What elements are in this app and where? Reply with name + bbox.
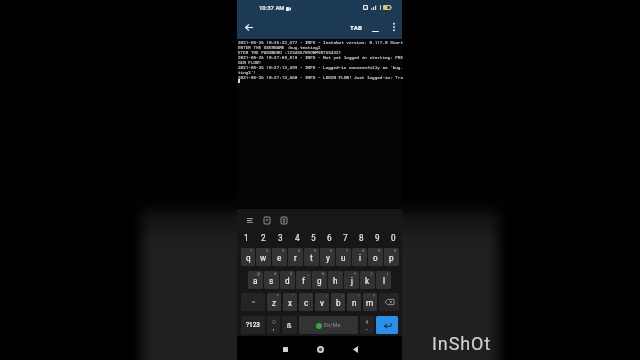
button[interactable]: - (328, 271, 343, 289)
button[interactable]: Minimize (367, 20, 383, 36)
staticText: z (272, 298, 277, 308)
staticText: 4 (295, 233, 300, 243)
staticText: ? (373, 294, 375, 298)
button[interactable]: 1 (241, 248, 255, 266)
button[interactable]: $ (280, 271, 295, 289)
button[interactable]: ? (363, 293, 377, 311)
staticText: b (336, 298, 341, 308)
button[interactable]: 9 (368, 248, 383, 266)
button[interactable]: 3 (272, 248, 287, 266)
button[interactable]: Home (312, 341, 328, 357)
button[interactable]: ! (347, 293, 361, 311)
staticText: ! (358, 294, 359, 298)
staticText: e (277, 253, 282, 263)
button[interactable]: ; (331, 293, 345, 311)
button[interactable]: 0 (385, 229, 401, 246)
button[interactable]: Clipboard (261, 214, 273, 226)
staticText: g (317, 276, 322, 286)
button[interactable]: . (360, 316, 374, 334)
staticText: $ (290, 272, 293, 276)
button[interactable]: 8 (353, 229, 369, 246)
button[interactable]: * (267, 293, 281, 311)
button[interactable]: ( (360, 271, 375, 289)
button[interactable]: + (344, 271, 359, 289)
staticText: 9 (378, 249, 381, 253)
staticText: a (253, 276, 258, 286)
button[interactable]: Shift (241, 293, 265, 311)
button[interactable]: Recents (277, 341, 293, 357)
staticText: 1 (244, 233, 249, 243)
button[interactable]: Emoji (267, 316, 280, 334)
button[interactable]: Backspace (379, 293, 399, 311)
button[interactable]: More options (385, 18, 403, 36)
button[interactable]: & (312, 271, 327, 289)
staticText: j (351, 276, 353, 286)
button[interactable]: Text editing (278, 214, 290, 226)
button[interactable]: ) (376, 271, 391, 289)
staticText: + (354, 272, 357, 276)
button[interactable]: Back (240, 18, 258, 36)
staticText: 6 (330, 249, 333, 253)
button[interactable]: ' (299, 293, 313, 311)
button[interactable]: _ (296, 271, 311, 289)
button[interactable]: @ (248, 271, 263, 289)
staticText: 0 (391, 233, 396, 243)
staticText: x (288, 298, 293, 308)
button[interactable]: 8 (352, 248, 367, 266)
button[interactable]: TAB (348, 21, 365, 34)
staticText: : (326, 294, 327, 298)
staticText: ?123 (246, 321, 261, 329)
button[interactable]: Enter (376, 316, 398, 334)
button[interactable]: 6 (320, 248, 335, 266)
staticText: i (359, 253, 361, 263)
button[interactable]: 2 (255, 229, 272, 246)
button[interactable]: 3 (272, 229, 289, 246)
staticText: o (373, 253, 378, 263)
button[interactable]: 5 (304, 248, 319, 266)
button[interactable]: Keyboard menu (244, 214, 256, 226)
staticText: 2 (266, 249, 269, 253)
staticText: TAB (350, 24, 363, 31)
staticText: 5 (311, 233, 316, 243)
staticText: v (320, 298, 324, 308)
staticText: m (366, 298, 374, 308)
button[interactable]: 0 (384, 248, 399, 266)
button[interactable]: ß (282, 316, 297, 334)
button[interactable]: 5 (305, 229, 321, 246)
staticText: & (322, 272, 325, 276)
staticText: ting2'! (238, 69, 257, 75)
staticText: c (304, 298, 309, 308)
button[interactable]: : (315, 293, 329, 311)
staticText: ; (342, 294, 343, 298)
staticText: # (274, 272, 277, 276)
button[interactable]: Space (299, 316, 358, 334)
staticText: 6 (327, 233, 332, 243)
staticText: 2021-05-26 10:37:08,818 - INFO - Not yet… (238, 54, 403, 60)
staticText: 2 (261, 233, 266, 243)
button[interactable]: 4 (288, 248, 303, 266)
button[interactable]: Back (347, 341, 363, 357)
button[interactable]: 1 (238, 229, 255, 246)
staticText: GIN FLOW! (238, 59, 262, 65)
button[interactable]: 4 (289, 229, 305, 246)
button[interactable]: 6 (321, 229, 337, 246)
staticText: k (365, 276, 370, 286)
staticText: En/Me (324, 322, 341, 329)
button[interactable]: 7 (337, 229, 353, 246)
button[interactable]: 7 (336, 248, 351, 266)
button[interactable]: 9 (369, 229, 385, 246)
staticText: ETER THE PASSWORD :123456789ONM987654321 (238, 49, 342, 55)
staticText: u (341, 253, 346, 263)
button[interactable]: 2 (256, 248, 271, 266)
staticText: 3 (278, 233, 283, 243)
staticText: w (260, 253, 267, 263)
staticText: 7 (343, 233, 348, 243)
button[interactable]: # (264, 271, 279, 289)
staticText: 4 (298, 249, 301, 253)
button[interactable]: " (283, 293, 297, 311)
staticText: n (352, 298, 357, 308)
button[interactable]: ?123 (241, 316, 265, 334)
staticText: 1 (250, 249, 253, 253)
staticText: 7 (346, 249, 349, 253)
staticText: - (340, 272, 341, 276)
